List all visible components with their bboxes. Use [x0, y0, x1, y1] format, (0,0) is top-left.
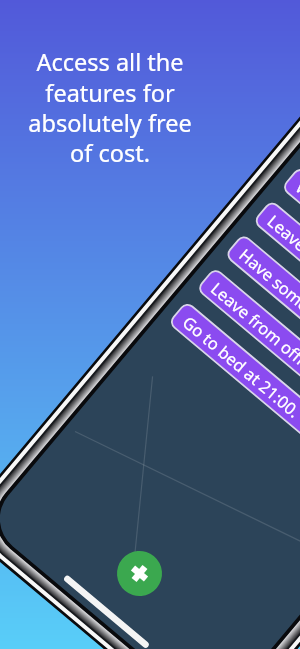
- staticText: Access all the features for absolutely f…: [16, 46, 204, 168]
